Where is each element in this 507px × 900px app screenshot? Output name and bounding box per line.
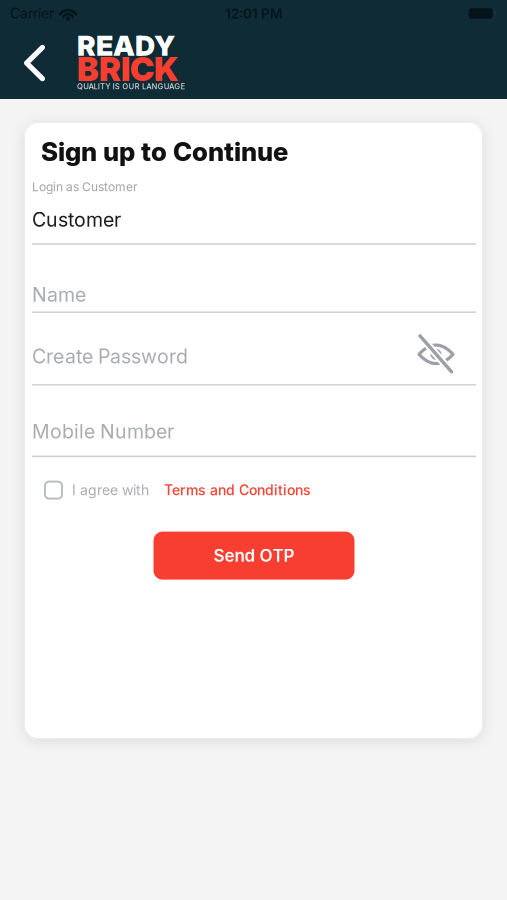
button[interactable]: Back xyxy=(0,27,53,99)
staticText: Create Password xyxy=(32,344,188,368)
button[interactable]: Show password xyxy=(417,343,476,369)
staticText: BRICK xyxy=(77,49,178,89)
button[interactable]: Terms and Conditions xyxy=(149,482,311,498)
staticText: QUALITY IS OUR LANGUAGE xyxy=(77,82,185,91)
staticText: Terms and Conditions xyxy=(164,482,311,498)
staticText: Carrier xyxy=(10,5,54,22)
staticText: Name xyxy=(32,283,86,306)
button[interactable]: Send OTP xyxy=(153,532,354,580)
staticText: 12:01 PM xyxy=(225,5,282,22)
staticText: Sign up to Continue xyxy=(41,136,288,167)
staticText: Customer xyxy=(32,208,121,231)
staticText: Mobile Number xyxy=(32,420,174,443)
staticText: READY xyxy=(77,29,175,62)
button[interactable]: I agree with Terms and Conditions xyxy=(44,481,63,500)
staticText: Send OTP xyxy=(213,545,294,566)
staticText: I agree with xyxy=(72,482,149,498)
staticText: Login as Customer xyxy=(32,180,138,194)
